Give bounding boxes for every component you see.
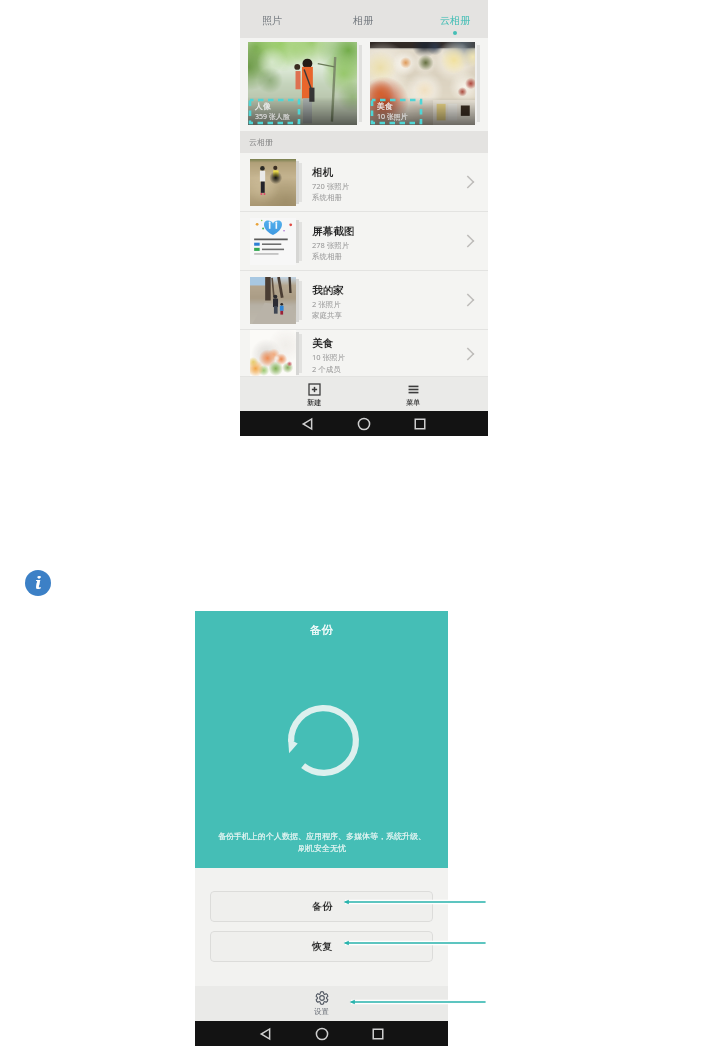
staticText: 屏幕截图 <box>312 225 354 238</box>
staticText: 照片 <box>262 14 282 27</box>
staticText: 2 个成员 <box>312 364 341 374</box>
staticText: 相机 <box>312 166 333 179</box>
staticText: 新建 <box>307 398 321 407</box>
button[interactable]: 新建 <box>302 377 326 411</box>
button[interactable]: Recents <box>413 417 427 431</box>
staticText: 278 张照片 <box>312 240 350 250</box>
staticText: 系统相册 <box>312 252 342 261</box>
staticText: 10 张照片 <box>312 352 346 362</box>
staticText: 恢复 <box>312 940 332 953</box>
button[interactable]: 菜单 <box>401 377 425 411</box>
staticText: 家庭共享 <box>312 311 342 320</box>
staticText: 备份 <box>312 900 332 913</box>
button[interactable]: Back <box>259 1027 273 1041</box>
button[interactable]: Recents <box>371 1027 385 1041</box>
staticText: 备份手机上的个人数据、应用程序、多媒体等，系统升级、 <box>218 831 426 841</box>
button[interactable]: Home <box>357 417 371 431</box>
staticText: 云相册 <box>249 137 273 147</box>
staticText: 系统相册 <box>312 193 342 202</box>
button[interactable]: Settings <box>306 989 337 1018</box>
staticText: 设置 <box>314 1007 329 1016</box>
staticText: 美食 <box>377 101 393 111</box>
staticText: 人像 <box>255 101 271 111</box>
staticText: 2 张照片 <box>312 299 341 309</box>
staticText: 云相册 <box>440 14 470 27</box>
button[interactable]: 相机 <box>240 153 488 211</box>
button[interactable]: Information <box>25 570 51 596</box>
staticText: 359 张人脸 <box>255 112 290 122</box>
button[interactable]: 美食 <box>240 330 488 377</box>
button[interactable]: 云相册 <box>437 0 473 38</box>
staticText: 美食 <box>312 337 333 350</box>
button[interactable]: 相册 <box>345 0 381 38</box>
staticText: 菜单 <box>406 398 420 407</box>
staticText: i <box>35 571 42 594</box>
button[interactable]: 屏幕截图 <box>240 212 488 270</box>
staticText: 720 张照片 <box>312 181 350 191</box>
staticText: 刷机安全无忧 <box>298 843 346 853</box>
button[interactable]: 恢复 <box>210 931 433 962</box>
staticText: 备份 <box>310 623 333 637</box>
staticText: 我的家 <box>312 284 344 297</box>
other: Settings <box>315 991 329 1005</box>
button[interactable]: Back <box>301 417 315 431</box>
button[interactable]: 备份 <box>210 891 433 922</box>
button[interactable]: 照片 <box>254 0 290 38</box>
button[interactable]: 我的家 <box>240 271 488 329</box>
staticText: 10 张照片 <box>377 112 408 122</box>
button[interactable]: Home <box>315 1027 329 1041</box>
staticText: 相册 <box>353 14 373 27</box>
